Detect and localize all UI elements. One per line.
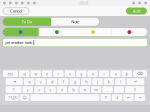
staticText: a — [28, 79, 30, 84]
button[interactable]: z — [23, 86, 33, 93]
button[interactable]: Note — [51, 17, 99, 26]
staticText: z — [27, 87, 29, 92]
staticText: yet another todo — [5, 40, 32, 45]
button[interactable]: d — [47, 78, 57, 85]
button[interactable]: c — [45, 86, 56, 93]
button[interactable]: ↑ — [100, 94, 111, 101]
button[interactable]: Yellow priority — [75, 28, 111, 36]
button[interactable]: ⇥ — [6, 78, 23, 85]
button[interactable]: i — [99, 70, 109, 77]
button[interactable]: l — [115, 78, 125, 85]
staticText: n — [84, 87, 86, 92]
staticText: t — [69, 71, 70, 76]
staticText: j — [97, 79, 98, 84]
staticText: ⌫ — [137, 71, 143, 76]
staticText: s — [40, 79, 42, 84]
button[interactable]: q — [19, 70, 29, 77]
button[interactable]: p — [122, 70, 132, 77]
staticText: p — [126, 71, 128, 76]
staticText: ↵ — [134, 79, 137, 84]
button[interactable]: j — [92, 78, 103, 85]
button[interactable]: ⌫ — [133, 70, 147, 77]
button[interactable]: ⇧ — [6, 86, 21, 93]
button[interactable]: esc — [3, 70, 18, 77]
button[interactable]: b — [68, 86, 78, 93]
button[interactable]: m — [91, 86, 101, 93]
staticText: , — [107, 87, 108, 92]
button[interactable]: x — [34, 86, 44, 93]
staticText: r — [57, 71, 59, 76]
button[interactable]: f — [58, 78, 68, 85]
staticText: c — [50, 87, 52, 92]
staticText: f — [63, 79, 64, 84]
staticText: b — [72, 87, 74, 92]
staticText: ☺ — [22, 95, 26, 100]
button[interactable]: → — [135, 94, 145, 101]
button[interactable]: Cancel — [3, 7, 29, 14]
staticText: Note — [71, 19, 79, 24]
button[interactable]: a — [24, 78, 34, 85]
button[interactable]: ↓ — [112, 94, 122, 101]
button[interactable]: Add — [126, 7, 147, 14]
button[interactable]: yet another todo — [2, 38, 147, 47]
button[interactable]: e — [42, 70, 52, 77]
button[interactable]: n — [80, 86, 90, 93]
staticText: u — [92, 71, 94, 76]
button[interactable]: t — [65, 70, 75, 77]
button[interactable]: . — [114, 86, 124, 93]
staticText: h — [85, 79, 87, 84]
staticText: o — [114, 71, 116, 76]
staticText: q — [23, 71, 25, 76]
staticText: w — [34, 71, 37, 76]
button[interactable]: ☺ — [20, 94, 29, 101]
staticText: x — [38, 87, 40, 92]
button[interactable] — [30, 94, 99, 101]
staticText: d — [51, 79, 53, 84]
staticText: Cancel — [10, 8, 22, 14]
button[interactable]: k — [104, 78, 114, 85]
button[interactable]: Blue priority — [2, 28, 39, 36]
staticText: Add — [133, 8, 140, 14]
button[interactable]: w — [30, 70, 41, 77]
staticText: ↑ — [104, 95, 107, 100]
button[interactable]: ← — [123, 94, 134, 101]
staticText: i — [104, 71, 105, 76]
staticText: y — [80, 71, 82, 76]
staticText: l — [120, 79, 121, 84]
button[interactable]: r — [53, 70, 64, 77]
button[interactable]: u — [87, 70, 98, 77]
staticText: .?123 — [7, 95, 16, 100]
button[interactable]: h — [81, 78, 91, 85]
button[interactable]: g — [70, 78, 80, 85]
button[interactable]: To Do — [2, 17, 51, 26]
staticText: ← — [127, 95, 130, 100]
button[interactable]: o — [110, 70, 121, 77]
staticText: ⇥ — [13, 79, 16, 84]
staticText: v — [61, 87, 63, 92]
staticText: esc — [7, 71, 13, 76]
staticText: ⇧ — [133, 87, 136, 92]
button[interactable]: ↵ — [127, 78, 144, 85]
button[interactable]: , — [102, 86, 113, 93]
button[interactable]: s — [35, 78, 46, 85]
staticText: k — [108, 79, 110, 84]
button[interactable]: v — [57, 86, 67, 93]
staticText: To Do — [22, 19, 32, 24]
staticText: → — [138, 95, 141, 100]
staticText: ⇧ — [12, 87, 15, 92]
button[interactable]: y — [76, 70, 86, 77]
staticText: 09:41 — [79, 0, 88, 6]
button[interactable]: ⇧ — [125, 86, 144, 93]
staticText: m — [94, 87, 98, 92]
staticText: g — [74, 79, 76, 84]
button[interactable]: Green priority — [39, 28, 75, 36]
button[interactable]: Red priority — [111, 28, 147, 36]
staticText: . — [118, 87, 119, 92]
button[interactable]: .?123 — [5, 94, 19, 101]
staticText: e — [46, 71, 48, 76]
staticText: ↓ — [116, 95, 119, 100]
